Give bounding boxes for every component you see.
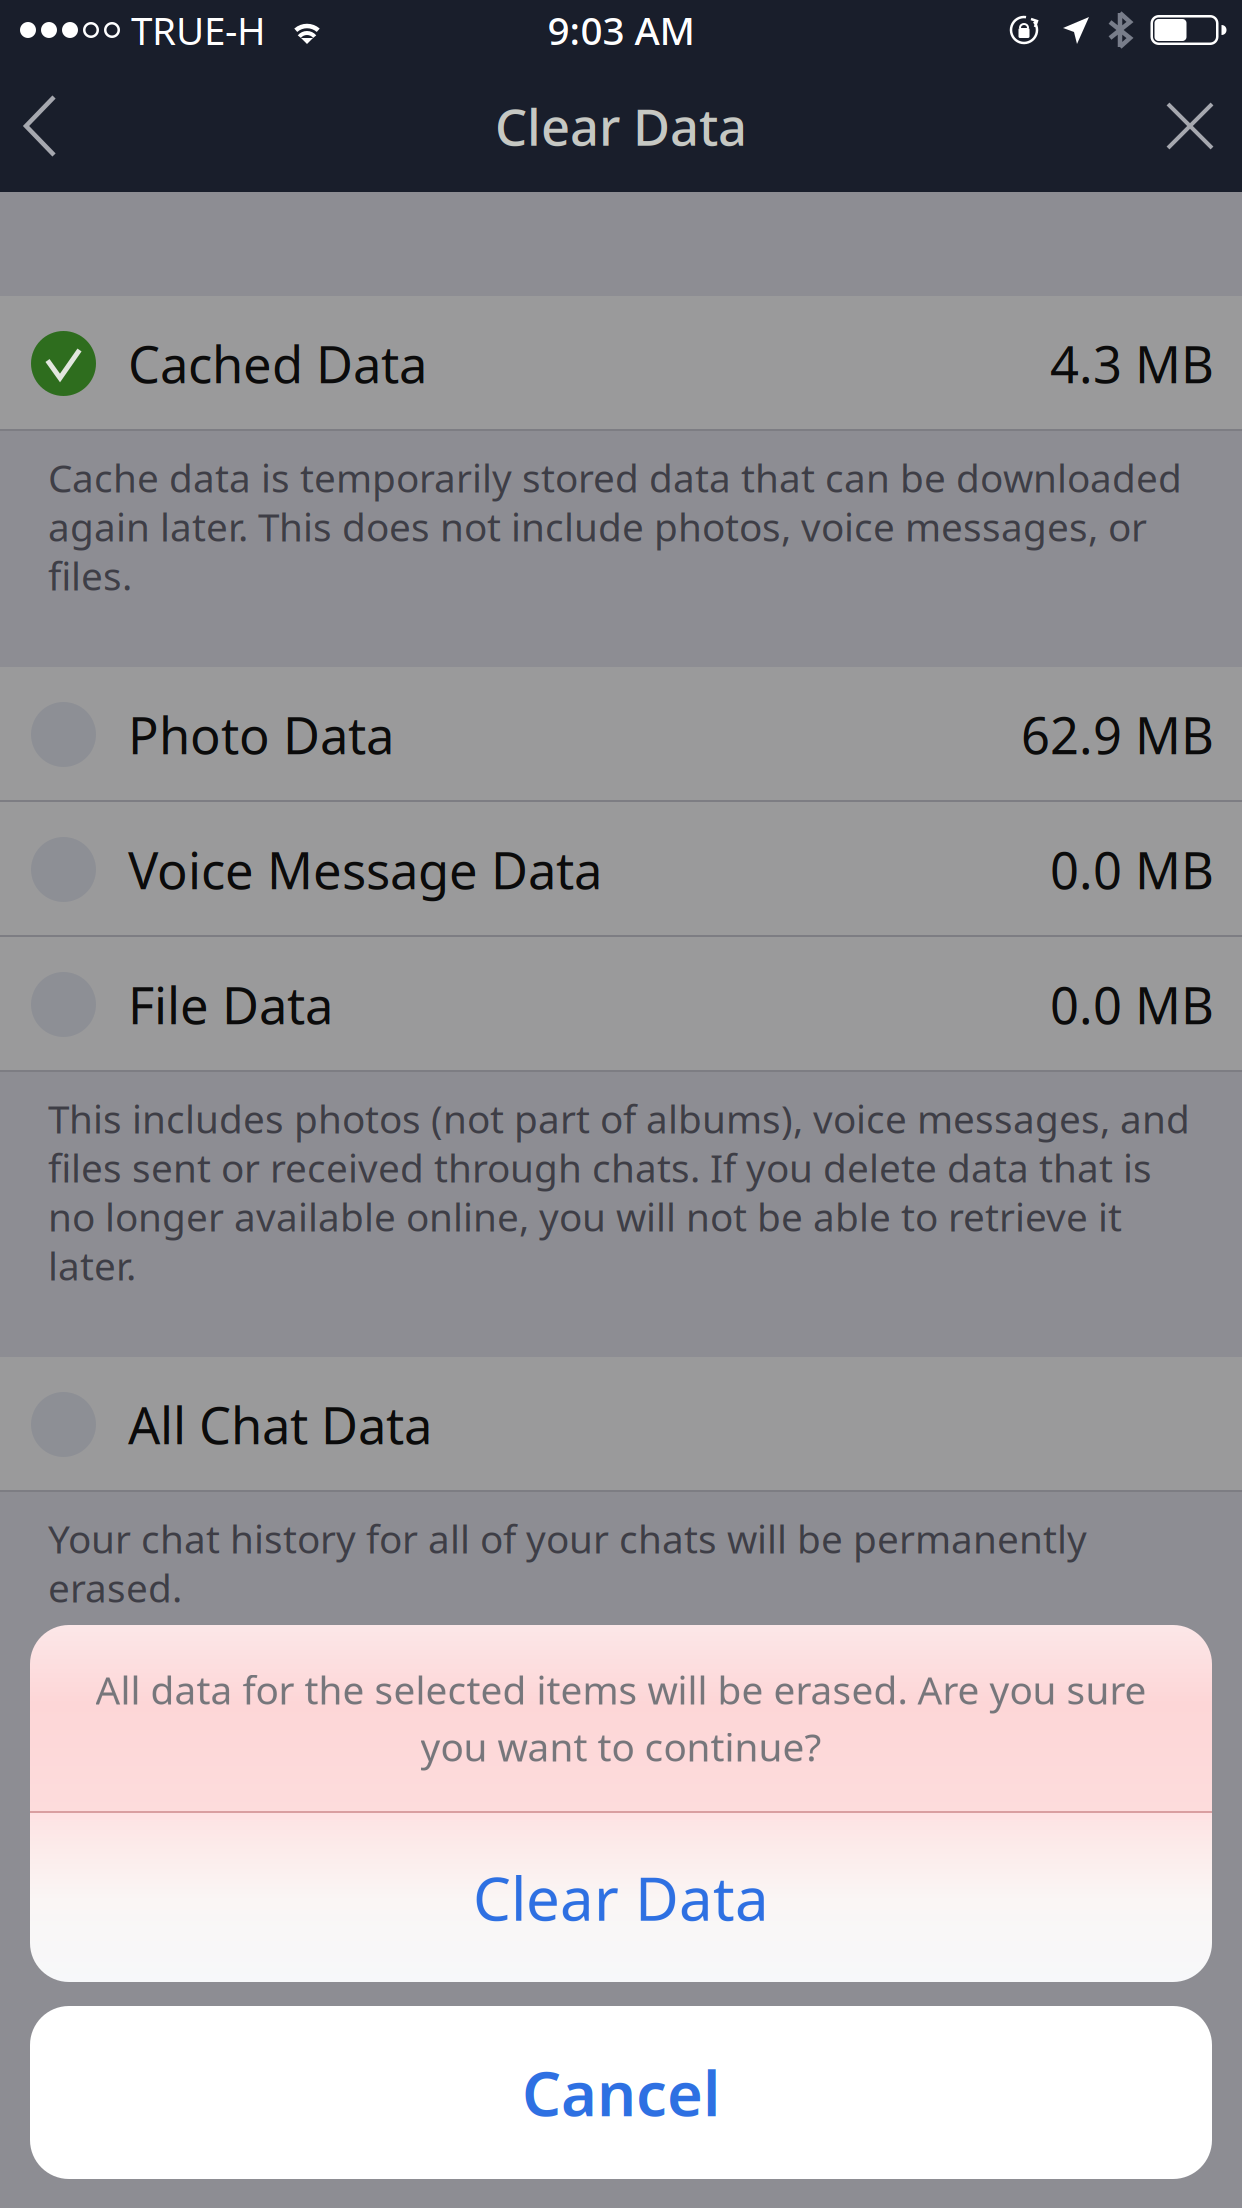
staticText: files. bbox=[48, 549, 132, 602]
button[interactable]: Photo Data bbox=[0, 667, 1242, 802]
button[interactable]: Close bbox=[1144, 69, 1220, 183]
staticText: no longer available online, you will not… bbox=[48, 1190, 1122, 1243]
staticText: erased. bbox=[48, 1561, 182, 1614]
staticText: Cancel bbox=[522, 2051, 720, 2134]
staticText: This includes photos (not part of albums… bbox=[48, 1092, 1190, 1145]
staticText: All data for the selected items will be … bbox=[95, 1663, 1146, 1716]
staticText: files sent or received through chats. If… bbox=[48, 1141, 1152, 1194]
button[interactable]: Cancel bbox=[30, 2006, 1212, 2179]
staticText: Photo Data bbox=[128, 700, 394, 769]
button[interactable]: Clear Data bbox=[30, 1813, 1212, 1982]
staticText: Cache data is temporarily stored data th… bbox=[48, 451, 1182, 504]
staticText: Clear Data bbox=[473, 1857, 769, 1938]
staticText: TRUE-H bbox=[131, 4, 266, 56]
staticText: again later. This does not include photo… bbox=[48, 500, 1147, 553]
staticText: Cached Data bbox=[128, 329, 427, 398]
button[interactable]: File Data bbox=[0, 937, 1242, 1072]
staticText: 0.0 MB bbox=[1050, 970, 1214, 1039]
staticText: you want to continue? bbox=[420, 1720, 821, 1773]
staticText: 9:03 AM bbox=[547, 4, 694, 56]
staticText: 0.0 MB bbox=[1050, 835, 1214, 904]
staticText: 4.3 MB bbox=[1050, 329, 1214, 398]
staticText: 62.9 MB bbox=[1021, 700, 1214, 769]
staticText: Voice Message Data bbox=[128, 835, 602, 904]
staticText: File Data bbox=[128, 970, 333, 1039]
button[interactable]: Voice Message Data bbox=[0, 802, 1242, 937]
staticText: All Chat Data bbox=[128, 1390, 432, 1459]
button[interactable]: All Chat Data bbox=[0, 1357, 1242, 1492]
button[interactable]: Back bbox=[14, 69, 90, 183]
button[interactable]: Cached Data bbox=[0, 296, 1242, 431]
staticText: later. bbox=[48, 1239, 136, 1292]
staticText: Clear Data bbox=[495, 91, 747, 160]
staticText: Your chat history for all of your chats … bbox=[48, 1512, 1087, 1565]
